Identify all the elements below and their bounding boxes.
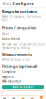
staticText: Measurements [2, 52, 32, 57]
staticText: Back [2, 1, 11, 6]
staticText: Bespoke curtains [2, 9, 37, 14]
button[interactable]: Back [1, 1, 12, 6]
button[interactable]: Shop [18, 96, 28, 99]
staticText: Prices / enquiries [2, 25, 36, 30]
button[interactable]: Account [37, 96, 46, 99]
staticText: Fabric [2, 32, 9, 36]
staticText: Made to measure, delivered free [2, 15, 41, 22]
staticText: Add to basket [12, 85, 33, 89]
button[interactable]: Add to basket [2, 85, 44, 89]
button[interactable]: Search [9, 96, 18, 99]
staticText: Width & drop in cm [2, 58, 29, 62]
staticText: Complete [2, 70, 16, 74]
staticText: Configure [12, 1, 33, 6]
staticText: Fittings (optional) [2, 64, 37, 69]
button[interactable]: Saved [28, 96, 37, 99]
staticText: Wall-mounted [2, 80, 21, 83]
staticText: We take care of everything from measurin… [2, 43, 44, 50]
staticText: Linen blend [2, 37, 20, 41]
staticText: Magnetic [2, 75, 14, 78]
button[interactable]: Home [0, 96, 9, 99]
